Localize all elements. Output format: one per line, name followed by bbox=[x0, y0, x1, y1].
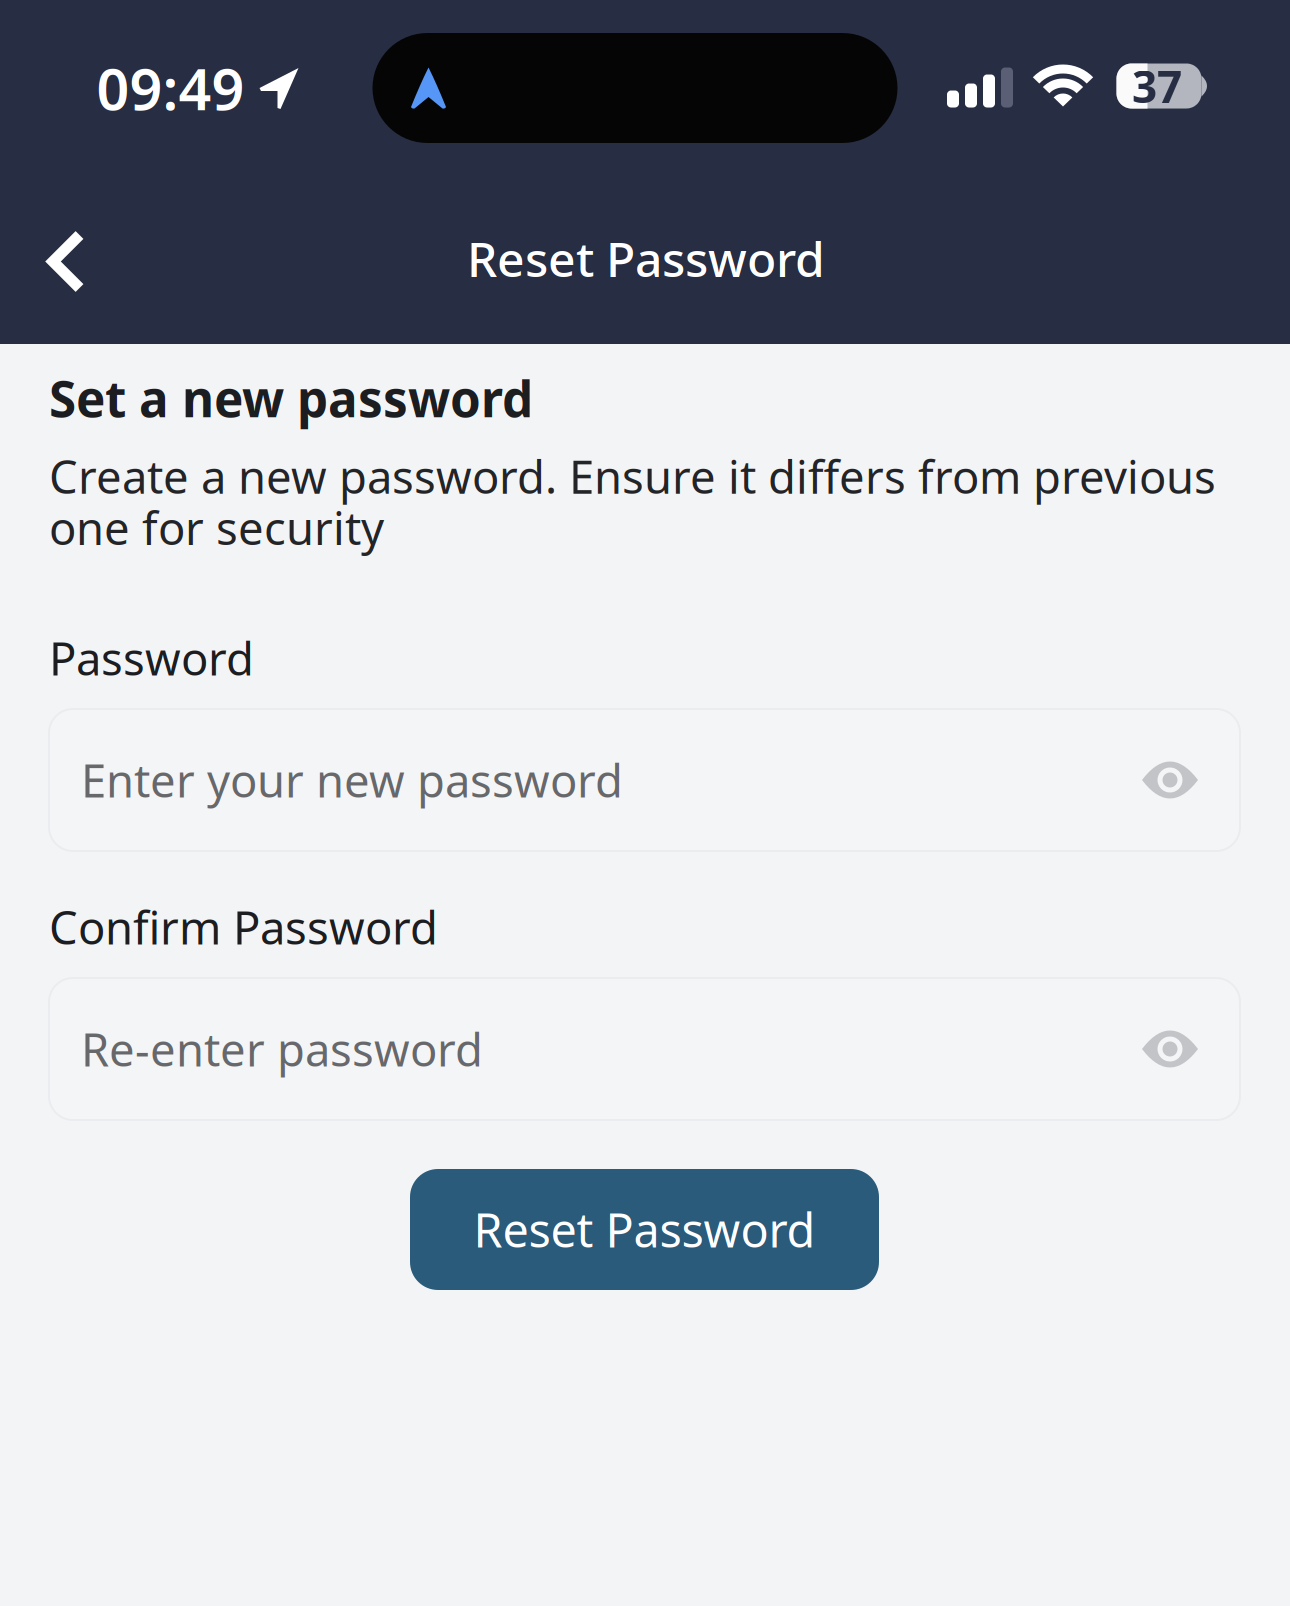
staticText: Password bbox=[49, 628, 254, 688]
button[interactable]: Reset Password bbox=[410, 1169, 879, 1290]
staticText: Re-enter password bbox=[81, 1019, 483, 1079]
button[interactable]: Show password bbox=[1122, 732, 1218, 828]
staticText: 09:49 bbox=[96, 50, 244, 126]
staticText: Set a new password bbox=[49, 365, 533, 431]
staticText: Create a new password. Ensure it differs… bbox=[49, 446, 1216, 557]
staticText: Reset Password bbox=[473, 1198, 815, 1260]
button[interactable]: Show password bbox=[1122, 1001, 1218, 1097]
staticText: Confirm Password bbox=[49, 897, 438, 957]
button[interactable]: Back bbox=[14, 209, 118, 313]
staticText: Enter your new password bbox=[81, 750, 623, 810]
staticText: 37 bbox=[1132, 57, 1182, 115]
staticText: Reset Password bbox=[467, 227, 825, 290]
